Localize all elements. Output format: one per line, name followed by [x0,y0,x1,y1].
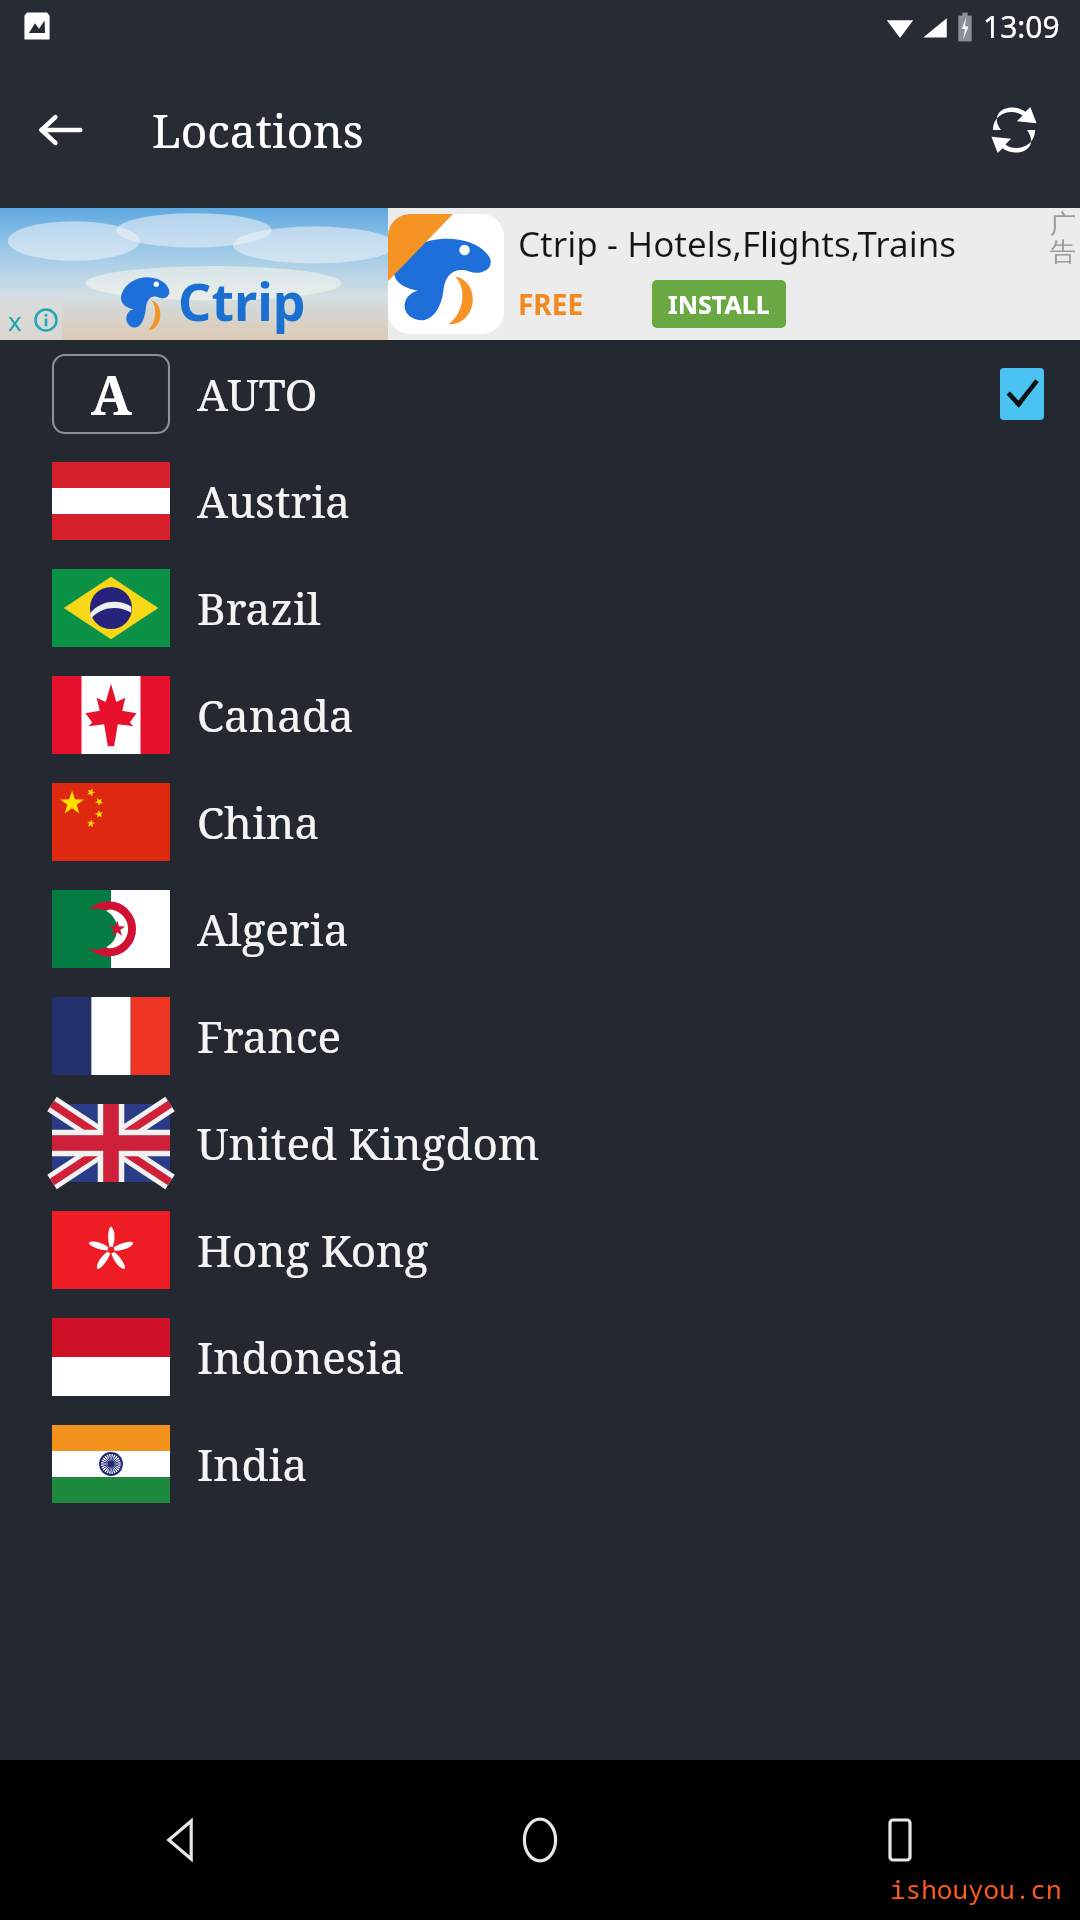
staticText: Ctrip [178,265,306,336]
staticText: Algeria [197,899,349,959]
button[interactable]: Hong Kong [0,1196,1080,1303]
button[interactable]: Ctrip [0,208,1080,340]
button[interactable]: Refresh [972,88,1056,172]
button[interactable]: INSTALL [668,287,770,321]
button[interactable]: China [0,768,1080,875]
button[interactable]: India [0,1410,1080,1517]
button[interactable]: Algeria [0,875,1080,982]
button[interactable]: Recents [720,1760,1080,1920]
button[interactable]: Back [18,88,102,172]
staticText: FREE [518,285,584,323]
staticText: Locations [152,99,364,162]
button[interactable]: Indonesia [0,1303,1080,1410]
button[interactable]: A [0,340,1080,447]
staticText: Indonesia [197,1327,405,1387]
staticText: 广 告 [1050,208,1076,269]
staticText: United Kingdom [197,1113,540,1173]
button[interactable]: United Kingdom [0,1089,1080,1196]
staticText: Brazil [197,578,321,638]
staticText: INSTALL [668,287,770,321]
staticText: Austria [197,471,350,531]
button[interactable]: Austria [0,447,1080,554]
button[interactable]: Home [360,1760,720,1920]
staticText: China [197,792,320,852]
staticText: AUTO [197,364,318,424]
button[interactable]: Canada [0,661,1080,768]
staticText: 13:09 [983,6,1060,47]
staticText: Hong Kong [197,1220,429,1280]
button[interactable]: France [0,982,1080,1089]
staticText: India [197,1434,308,1494]
staticText: Canada [197,685,354,745]
button[interactable]: Back [0,1760,360,1920]
staticText: x [8,303,22,338]
button[interactable]: Brazil [0,554,1080,661]
staticText: France [197,1006,342,1066]
staticText: A [91,357,132,431]
staticText: ishouyou.cn [890,1871,1062,1906]
staticText: Ctrip - Hotels,Flights,Trains [518,220,957,268]
